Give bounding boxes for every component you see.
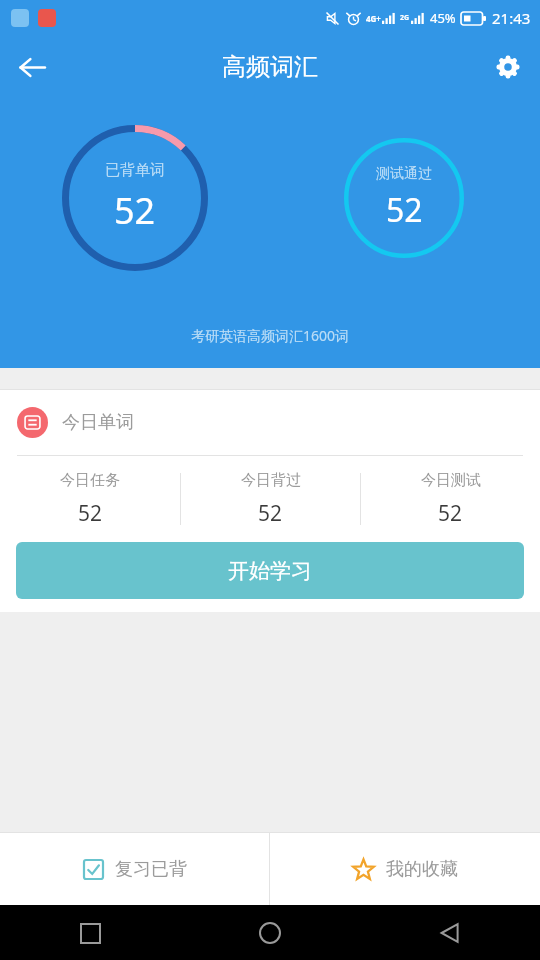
staticText: 52	[78, 499, 103, 528]
staticText: 45%	[430, 9, 456, 27]
button[interactable]: 今日测试	[361, 456, 540, 542]
button[interactable]: Back	[426, 909, 474, 957]
button[interactable]: 复习已背	[0, 833, 269, 905]
staticText: 52	[258, 499, 283, 528]
staticText: 2G	[400, 13, 410, 23]
button[interactable]: Settings	[485, 44, 531, 90]
staticText: 测试通过	[376, 165, 432, 183]
button[interactable]: 我的收藏	[270, 833, 540, 905]
staticText: 52	[114, 186, 156, 235]
button[interactable]: 今日背过	[181, 456, 360, 542]
staticText: 52	[438, 499, 463, 528]
button[interactable]: Back	[8, 43, 56, 91]
staticText: 4G+	[366, 13, 381, 24]
button[interactable]: Home	[246, 909, 294, 957]
staticText: 今日任务	[60, 471, 120, 490]
button[interactable]: 今日任务	[0, 456, 180, 542]
staticText: 今日测试	[421, 471, 481, 490]
button[interactable]: 开始学习	[16, 542, 524, 599]
staticText: 高频词汇	[222, 52, 318, 82]
staticText: 开始学习	[228, 558, 312, 584]
staticText: 52	[386, 188, 423, 232]
staticText: 考研英语高频词汇1600词	[191, 326, 350, 345]
staticText: 今日单词	[62, 411, 134, 434]
staticText: 我的收藏	[386, 858, 458, 881]
staticText: 21:43	[492, 8, 531, 28]
button[interactable]: 今日单词	[0, 390, 540, 455]
staticText: 今日背过	[241, 471, 301, 490]
button[interactable]: Recents	[66, 909, 114, 957]
staticText: 已背单词	[105, 161, 165, 180]
staticText: 复习已背	[115, 858, 187, 881]
